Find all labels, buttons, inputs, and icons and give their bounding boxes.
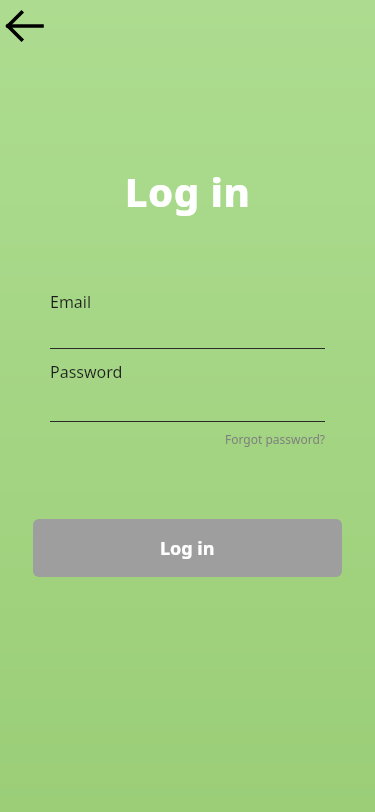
- button[interactable]: Log in: [33, 519, 342, 577]
- staticText: Password: [50, 361, 123, 383]
- button[interactable]: Back: [0, 2, 50, 50]
- button[interactable]: Forgot password?: [205, 429, 325, 449]
- staticText: Forgot password?: [224, 431, 325, 447]
- staticText: Email: [50, 291, 92, 313]
- staticText: Log in: [0, 164, 375, 218]
- staticText: Log in: [160, 536, 215, 561]
